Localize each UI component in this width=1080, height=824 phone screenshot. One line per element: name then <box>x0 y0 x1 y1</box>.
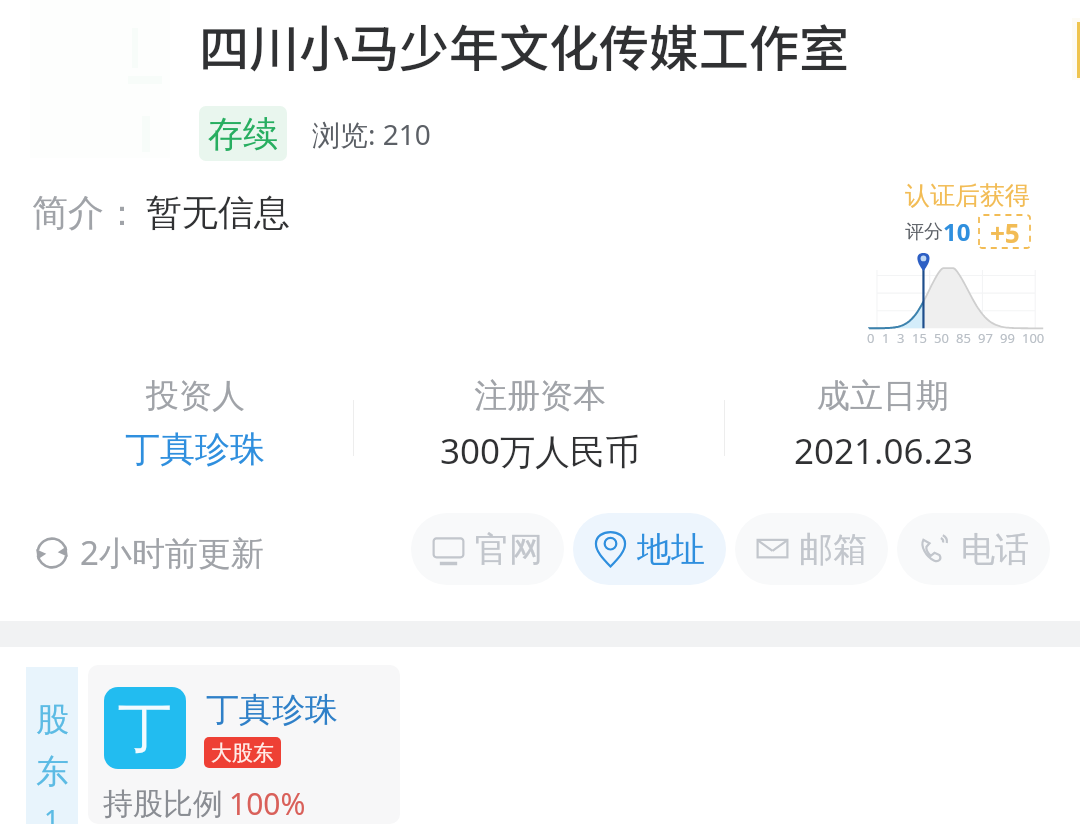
button[interactable]: 成立日期 <box>723 375 1043 475</box>
staticText: 1 <box>44 801 60 824</box>
staticText: 大股东 <box>211 740 274 766</box>
staticText: 50 <box>934 329 949 347</box>
staticText: 东 <box>36 751 69 793</box>
staticText: 成立日期 <box>817 375 949 417</box>
staticText: 股 <box>36 699 69 741</box>
staticText: 丁真珍珠 <box>125 427 265 471</box>
staticText: +5 <box>990 215 1020 248</box>
staticText: 97 <box>978 329 993 347</box>
staticText: 存续 <box>208 112 278 156</box>
other: Refresh <box>34 535 70 571</box>
staticText: 邮箱 <box>799 528 867 571</box>
staticText: 持股比例 <box>103 785 223 823</box>
button[interactable]: 四川小马少年文化传媒工作室 <box>199 9 849 81</box>
staticText: 简介： <box>32 190 140 235</box>
button[interactable]: 投资人 <box>35 375 355 471</box>
staticText: 1 <box>882 329 890 347</box>
staticText: 认证后获得 <box>905 180 1030 211</box>
staticText: 四川小马少年文化传媒工作室 <box>199 9 849 81</box>
staticText: 暂无信息 <box>146 190 290 235</box>
staticText: 3 <box>897 329 905 347</box>
staticText: 投资人 <box>146 375 245 417</box>
staticText: 2小时前更新 <box>80 530 264 575</box>
staticText: 15 <box>912 329 927 347</box>
staticText: 99 <box>1000 329 1015 347</box>
button[interactable]: 丁 <box>88 665 400 824</box>
button[interactable]: 存续 <box>199 106 287 161</box>
staticText: 官网 <box>475 528 543 571</box>
staticText: 电话 <box>961 528 1029 571</box>
button[interactable]: 官网 <box>411 513 564 585</box>
button[interactable]: 注册资本 <box>380 375 700 475</box>
button[interactable]: 认证后获得 <box>867 180 1045 348</box>
staticText: 浏览: 210 <box>312 115 431 153</box>
button[interactable]: 邮箱 <box>735 513 888 585</box>
staticText: 300万人民币 <box>440 427 641 475</box>
staticText: 评分 <box>905 220 943 244</box>
button[interactable]: 地址 <box>573 513 726 585</box>
staticText: 10 <box>943 215 971 248</box>
staticText: 丁 <box>118 694 172 762</box>
staticText: 0 <box>867 329 875 347</box>
staticText: 100% <box>229 783 306 824</box>
staticText: 2021.06.23 <box>794 427 973 475</box>
staticText: 85 <box>956 329 971 347</box>
button[interactable]: 电话 <box>897 513 1050 585</box>
staticText: 地址 <box>637 528 705 571</box>
staticText: 注册资本 <box>474 375 606 417</box>
button[interactable]: Refresh <box>34 530 264 575</box>
staticText: 丁真珍珠 <box>206 689 338 731</box>
staticText: 100 <box>1022 329 1045 347</box>
button[interactable]: 丁真珍珠 <box>206 689 338 731</box>
